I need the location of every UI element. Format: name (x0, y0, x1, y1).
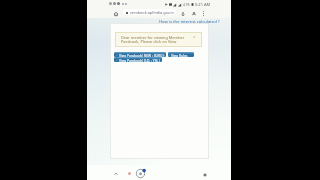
staticText: How is the interest calculated ? (159, 19, 220, 25)
button[interactable]: New tab (200, 170, 209, 179)
button[interactable]: Home (125, 169, 134, 178)
button[interactable]: More options (200, 10, 207, 17)
staticText: zerobook.apfindia.gov.in (130, 10, 174, 15)
staticText: 5:21 AM (195, 2, 211, 7)
staticText: × (193, 34, 196, 40)
button[interactable]: Switch or open tabs (134, 167, 147, 180)
button[interactable]: View Rules Status (168, 52, 194, 57)
staticText: View Rules Status (171, 53, 194, 57)
button[interactable]: Account (190, 10, 197, 17)
staticText: View Passbook( NEW : SURU ) (119, 53, 165, 57)
button[interactable]: View Passbook( O.D. : YSL ) (114, 57, 162, 62)
button[interactable]: View Passbook( NEW : SURU ) (114, 52, 166, 57)
button[interactable]: Home (112, 10, 119, 17)
button[interactable]: Back (111, 169, 120, 178)
button[interactable]: How is the interest calculated ? (159, 19, 220, 25)
button[interactable]: zerobook.apfindia.gov.in (123, 9, 176, 15)
button[interactable]: Voice search (179, 10, 186, 17)
staticText: 4.95 (183, 2, 190, 7)
staticText: Dear member for viewing Member Passbook,… (121, 35, 188, 44)
staticText: View Passbook( O.D. : YSL ) (119, 58, 161, 62)
